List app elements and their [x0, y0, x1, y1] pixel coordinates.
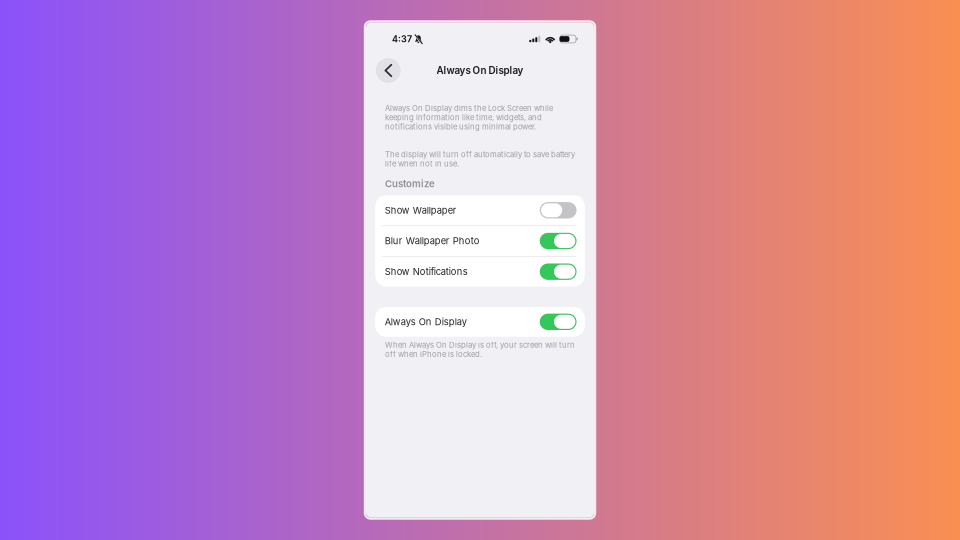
staticText: Blur Wallpaper Photo	[385, 235, 480, 247]
button[interactable]: Show Wallpaper	[375, 195, 585, 225]
staticText: When Always On Display is off, your scre…	[385, 340, 575, 359]
staticText: Show Wallpaper	[385, 205, 457, 216]
staticText: Always On Display	[385, 316, 467, 327]
button[interactable]: Blur Wallpaper Photo	[375, 226, 585, 256]
staticText: Always On Display dims the Lock Screen w…	[385, 103, 553, 131]
staticText: Always On Display	[436, 65, 523, 76]
button[interactable]: Always On Display	[375, 307, 585, 337]
staticText: Customize	[385, 178, 435, 189]
button[interactable]: Back	[373, 55, 403, 85]
staticText: Show Notifications	[385, 266, 468, 277]
button[interactable]: Show Notifications	[375, 257, 585, 287]
staticText: The display will turn off automatically …	[385, 150, 575, 168]
staticText: 4:37	[392, 34, 412, 44]
